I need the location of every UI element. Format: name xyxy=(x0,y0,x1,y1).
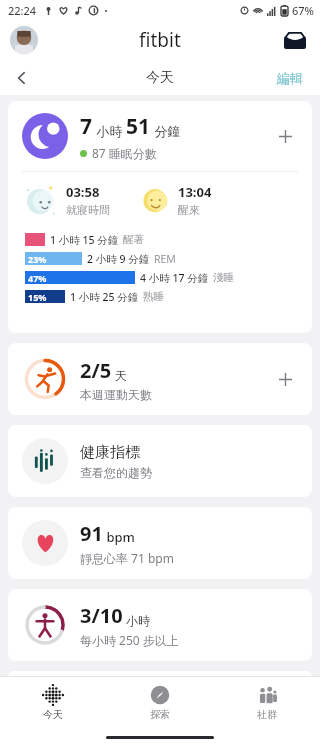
staticText: 探索 xyxy=(150,708,170,721)
staticText: 小時 xyxy=(123,612,151,628)
button[interactable]: Profile xyxy=(10,26,38,54)
staticText: 社群 xyxy=(257,708,277,721)
staticText: 1 小時 15 分鐘 xyxy=(50,233,119,247)
staticText: 23% xyxy=(28,253,47,265)
staticText: 4 小時 17 分鐘 xyxy=(140,271,209,285)
staticText: 67% xyxy=(292,3,314,18)
button[interactable]: Add sleep xyxy=(272,123,298,149)
staticText: 7 xyxy=(80,112,93,141)
staticText: 15% xyxy=(28,291,47,303)
staticText: 就寢時間 xyxy=(66,203,110,217)
staticText: 47% xyxy=(28,272,47,284)
staticText: 03:58 xyxy=(66,183,100,201)
staticText: fitbit xyxy=(139,27,181,53)
staticText: 小時 xyxy=(93,122,126,140)
staticText: 1 小時 25 分鐘 xyxy=(70,290,139,304)
staticText: 51 xyxy=(126,112,151,141)
button[interactable]: Add exercise xyxy=(272,366,298,392)
staticText: 今天 xyxy=(146,69,174,87)
staticText: 健康指標 xyxy=(80,443,140,462)
button[interactable]: 今天 xyxy=(0,677,106,727)
button[interactable]: 編輯 xyxy=(268,67,312,89)
staticText: 編輯 xyxy=(277,70,303,86)
staticText: 本週運動天數 xyxy=(80,387,152,402)
staticText: REM xyxy=(154,252,176,266)
button[interactable]: 7 xyxy=(8,101,312,333)
staticText: 13:04 xyxy=(178,183,212,201)
button[interactable]: Back xyxy=(6,62,38,94)
staticText: 22:24 xyxy=(8,3,37,18)
button[interactable]: 探索 xyxy=(106,677,213,727)
staticText: 3/10 xyxy=(80,602,123,629)
staticText: 91 xyxy=(80,520,103,547)
button[interactable]: 2/5 xyxy=(8,343,312,415)
staticText: 87 睡眠分數 xyxy=(92,145,157,161)
button[interactable]: 健康指標 xyxy=(8,425,312,497)
staticText: 醒來 xyxy=(178,203,200,217)
staticText: 天 xyxy=(112,367,128,383)
staticText: 查看您的趨勢 xyxy=(80,465,152,480)
button[interactable]: 91 xyxy=(8,507,312,579)
button[interactable]: Messages xyxy=(280,25,310,55)
staticText: 每小時 250 步以上 xyxy=(80,632,179,648)
staticText: 今天 xyxy=(43,708,63,721)
staticText: 靜息心率 71 bpm xyxy=(80,550,174,566)
staticText: 2/5 xyxy=(80,357,112,384)
staticText: 2 小時 9 分鐘 xyxy=(87,252,150,266)
staticText: 分鐘 xyxy=(151,122,181,140)
staticText: 淺睡 xyxy=(213,271,234,284)
staticText: bpm xyxy=(103,528,135,546)
button[interactable]: 社群 xyxy=(213,677,320,727)
staticText: 醒著 xyxy=(123,233,144,246)
button[interactable]: 3/10 xyxy=(8,589,312,661)
staticText: 熟睡 xyxy=(143,290,164,303)
